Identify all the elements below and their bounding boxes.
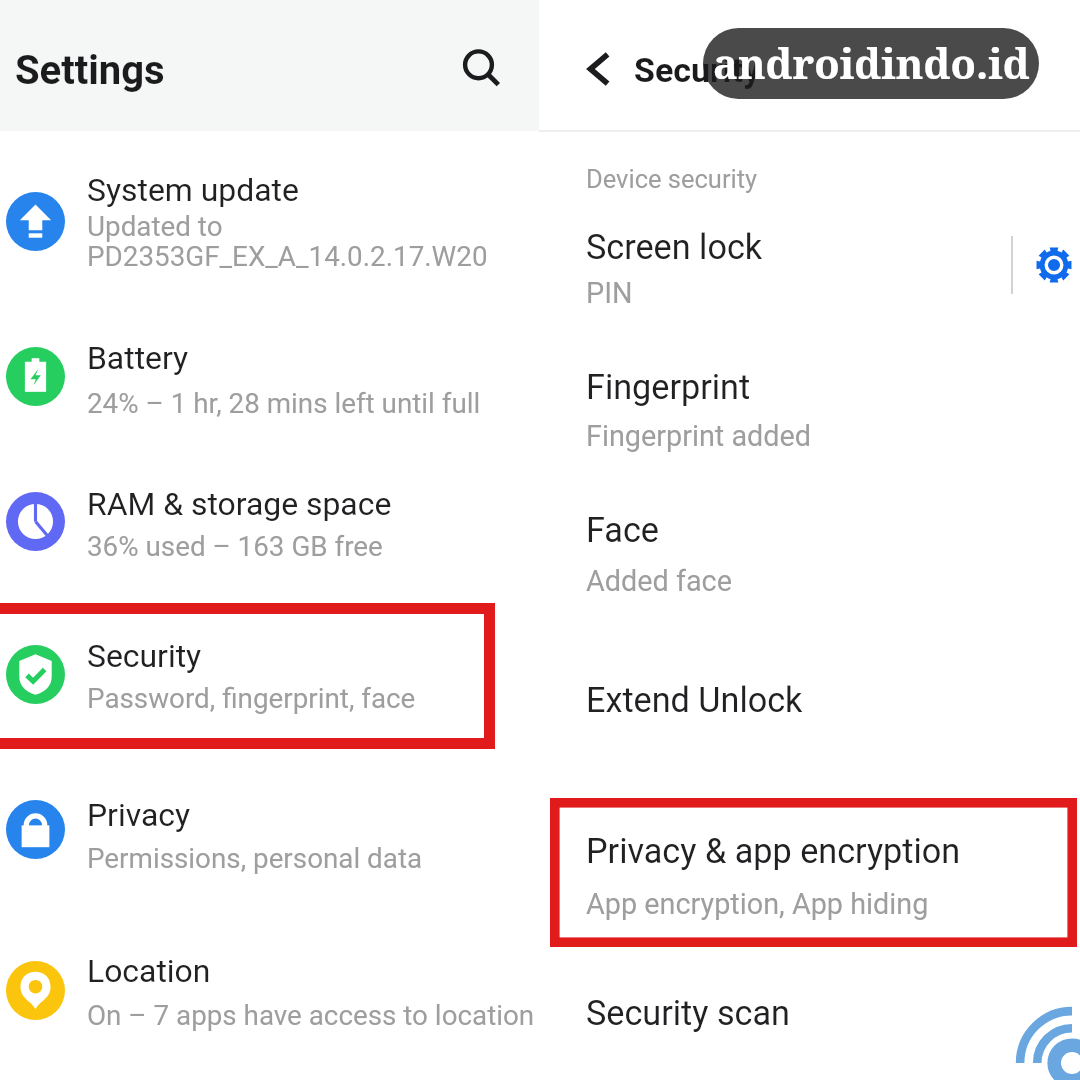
staticText: Security scan: [586, 993, 1080, 1033]
button[interactable]: RAM & storage space: [0, 459, 539, 583]
staticText: Security: [634, 50, 1080, 90]
staticText: Extend Unlock: [586, 680, 1080, 720]
button[interactable]: Screen lock settings: [1019, 230, 1080, 300]
staticText: System update: [87, 171, 607, 208]
staticText: PIN: [586, 276, 1080, 310]
button[interactable]: Privacy & app encryption: [539, 811, 1080, 921]
staticText: Location: [87, 952, 607, 989]
button[interactable]: Screen lock: [539, 207, 1080, 317]
staticText: Permissions, personal data: [87, 842, 607, 875]
button[interactable]: Extend Unlock: [539, 660, 1080, 730]
button[interactable]: Back: [565, 35, 633, 103]
staticText: Privacy & app encryption: [586, 831, 1080, 871]
staticText: App encryption, App hiding: [586, 887, 1080, 921]
button[interactable]: Fingerprint: [539, 347, 1080, 457]
staticText: Security: [87, 637, 607, 674]
staticText: Device security: [586, 164, 1080, 194]
staticText: 36% used – 163 GB free: [87, 530, 607, 563]
button[interactable]: Privacy: [0, 767, 539, 891]
staticText: Added face: [586, 564, 1080, 598]
staticText: Screen lock: [586, 227, 1080, 267]
staticText: Privacy: [87, 796, 607, 833]
staticText: Face: [586, 510, 1080, 550]
button[interactable]: System update: [0, 159, 539, 283]
staticText: Password, fingerprint, face: [87, 682, 607, 715]
staticText: Settings: [15, 47, 554, 94]
button[interactable]: Battery: [0, 314, 539, 438]
staticText: Fingerprint added: [586, 419, 1080, 453]
button[interactable]: Security: [0, 612, 539, 736]
staticText: androidindo.id: [713, 35, 1030, 92]
staticText: Battery: [87, 339, 607, 376]
button[interactable]: Security scan: [539, 973, 1080, 1043]
staticText: Updated to PD2353GF_EX_A_14.0.2.17.W20: [87, 210, 607, 273]
button[interactable]: Search: [448, 35, 508, 95]
staticText: RAM & storage space: [87, 485, 607, 522]
button[interactable]: Location: [0, 928, 539, 1052]
staticText: On – 7 apps have access to location: [87, 999, 607, 1032]
button[interactable]: Face: [539, 490, 1080, 600]
staticText: Fingerprint: [586, 367, 1080, 407]
staticText: 24% – 1 hr, 28 mins left until full: [87, 387, 607, 420]
